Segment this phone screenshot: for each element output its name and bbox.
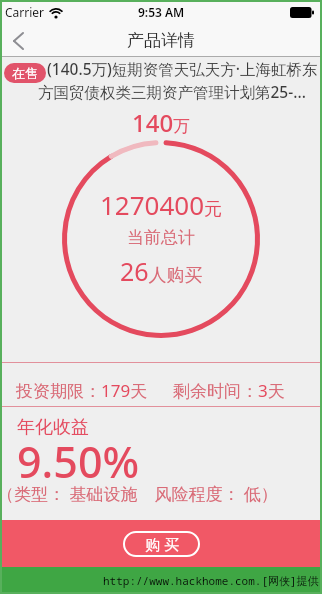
staticText: （类型： 基础设施 风险程度： 低） [0,482,278,505]
staticText: 26人购买 [120,254,203,288]
staticText: 产品详情 [127,30,195,51]
staticText: (140.5万)短期资管天弘天方·上海虹桥东 [47,58,318,79]
button[interactable] [6,29,30,53]
staticText: 购 买 [145,534,179,554]
staticText: http://www.hackhome.com.[网侠]提供 [103,573,319,588]
staticText: Carrier [5,4,45,20]
staticText: 投资期限：179天 [16,379,148,402]
staticText: 9:53 AM [138,4,185,20]
staticText: 140万 [132,106,191,139]
staticText: 方国贸债权类三期资产管理计划第25-... [38,81,306,102]
button[interactable]: 在售 [4,63,46,83]
staticText: 9.50% [17,432,140,491]
staticText: 当前总计 [127,227,195,248]
staticText: 在售 [12,65,38,81]
button[interactable]: 购 买 [123,531,200,557]
staticText: 年化收益 [17,416,89,439]
staticText: 剩余时间：3天 [173,379,285,402]
staticText: 1270400元 [100,187,223,222]
